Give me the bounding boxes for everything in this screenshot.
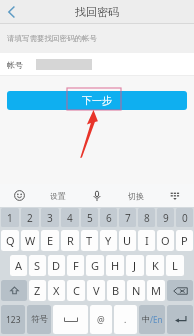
button[interactable]: Q	[1, 230, 19, 251]
staticText: J	[133, 258, 137, 273]
staticText: 1	[7, 211, 13, 225]
staticText: 设置	[50, 191, 66, 201]
staticText: 0	[182, 211, 188, 225]
button[interactable]: Enter	[167, 305, 193, 334]
button[interactable]: 符号	[27, 305, 51, 334]
staticText: U	[123, 233, 132, 248]
button[interactable]: Y	[100, 230, 117, 251]
button[interactable]: H	[106, 255, 124, 276]
button[interactable]: U	[119, 230, 136, 251]
button[interactable]: A	[10, 255, 27, 276]
button[interactable]: Backspace	[167, 280, 193, 301]
button[interactable]: Hide keyboard	[155, 184, 194, 207]
button[interactable]: 2	[21, 208, 39, 227]
staticText: E	[47, 233, 54, 248]
button[interactable]: K	[146, 255, 164, 276]
button[interactable]: X	[48, 280, 65, 301]
button[interactable]: 7	[119, 208, 136, 227]
staticText: 找回密码	[75, 5, 119, 19]
staticText: R	[67, 233, 74, 248]
button[interactable]: Back	[0, 0, 22, 24]
staticText: N	[132, 283, 141, 298]
staticText: 请填写需要找回密码的帐号	[7, 34, 97, 43]
button[interactable]: Z	[29, 280, 46, 301]
button[interactable]: D	[48, 255, 65, 276]
button[interactable]: 中	[139, 305, 165, 334]
staticText: L	[172, 258, 178, 273]
button[interactable]: T	[81, 230, 98, 251]
button[interactable]: B	[107, 280, 125, 301]
staticText: B	[112, 283, 120, 298]
staticText: S	[34, 258, 41, 273]
staticText: G	[91, 258, 100, 273]
button[interactable]: G	[86, 255, 104, 276]
button[interactable]: S	[29, 255, 46, 276]
staticText: 4	[67, 211, 73, 225]
staticText: 中	[142, 314, 150, 324]
staticText: 下一步	[82, 94, 112, 107]
staticText: 符号	[31, 314, 48, 325]
staticText: Y	[105, 233, 112, 248]
button[interactable]: F	[67, 255, 84, 276]
button[interactable]: M	[147, 280, 165, 301]
button[interactable]: V	[87, 280, 105, 301]
button[interactable]: 5	[81, 208, 98, 227]
button[interactable]: P	[176, 230, 193, 251]
staticText: I	[145, 233, 149, 248]
button[interactable]: L	[166, 255, 184, 276]
staticText: C	[73, 283, 80, 298]
staticText: 8	[144, 211, 150, 225]
staticText: .	[124, 314, 127, 326]
button[interactable]: Voice input	[77, 184, 116, 207]
button[interactable]: 8	[138, 208, 155, 227]
button[interactable]: 4	[61, 208, 79, 227]
button[interactable]: O	[157, 230, 174, 251]
staticText: T	[86, 233, 93, 248]
staticText: X	[53, 283, 60, 298]
staticText: @	[97, 314, 105, 326]
staticText: P	[181, 233, 188, 248]
staticText: M	[151, 283, 161, 298]
staticText: H	[111, 258, 120, 273]
staticText: K	[152, 258, 159, 273]
button[interactable]: N	[127, 280, 145, 301]
button[interactable]: W	[21, 230, 39, 251]
staticText: 3	[47, 211, 53, 225]
staticText: /En	[150, 314, 163, 325]
button[interactable]: E	[41, 230, 59, 251]
button[interactable]: 设置	[38, 184, 77, 207]
button[interactable]: 9	[157, 208, 174, 227]
staticText: F	[73, 258, 79, 273]
staticText: Z	[34, 283, 41, 298]
button[interactable]: J	[126, 255, 144, 276]
staticText: 2	[27, 211, 33, 225]
button[interactable]: I	[138, 230, 155, 251]
button[interactable]: 0	[176, 208, 193, 227]
staticText: 6	[106, 211, 112, 225]
button[interactable]: Emoji	[0, 184, 38, 207]
button[interactable]: Space	[53, 305, 88, 334]
button[interactable]: Shift	[1, 280, 27, 301]
button[interactable]: R	[61, 230, 79, 251]
button[interactable]: 3	[41, 208, 59, 227]
button[interactable]: .	[114, 305, 137, 334]
button[interactable]: 6	[100, 208, 117, 227]
button[interactable]: 123	[1, 305, 25, 334]
staticText: 帐号	[7, 60, 23, 70]
button[interactable]: @	[90, 305, 112, 334]
staticText: 123	[6, 314, 21, 326]
staticText: 7	[125, 211, 131, 225]
staticText: 5	[87, 211, 93, 225]
button[interactable]: C	[67, 280, 85, 301]
button[interactable]: 1	[1, 208, 19, 227]
staticText: Q	[6, 233, 15, 248]
staticText: O	[161, 233, 170, 248]
staticText: 切换	[128, 191, 144, 201]
staticText: V	[93, 283, 100, 298]
staticText: D	[52, 258, 61, 273]
button[interactable]: 切换	[116, 184, 155, 207]
button[interactable]: 下一步	[7, 91, 187, 110]
staticText: W	[25, 233, 36, 248]
staticText: 9	[163, 211, 169, 225]
button[interactable]: 帐号	[7, 53, 194, 76]
